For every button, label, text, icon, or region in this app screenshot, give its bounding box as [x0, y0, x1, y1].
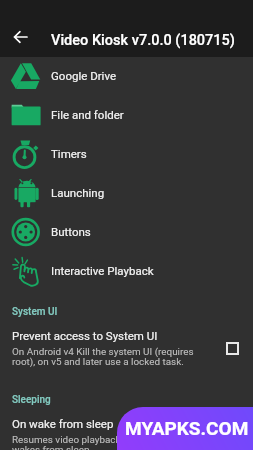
- button[interactable]: Navigate up: [0, 17, 40, 57]
- button[interactable]: Launching: [0, 173, 253, 212]
- button[interactable]: Buttons: [0, 212, 253, 251]
- staticText: File and folder: [51, 108, 124, 121]
- button[interactable]: Prevent access to System UI: [0, 329, 253, 368]
- staticText: System UI: [12, 306, 58, 318]
- staticText: Google Drive: [51, 69, 116, 82]
- staticText: On wake from sleep: [12, 417, 114, 430]
- staticText: Buttons: [51, 225, 91, 238]
- staticText: MYAPKS.COM: [125, 417, 249, 439]
- staticText: Timers: [51, 147, 87, 160]
- button[interactable]: On wake from sleep: [0, 417, 253, 450]
- staticText: Sleeping: [12, 394, 51, 406]
- staticText: On Android v4 Kill the system UI (requir…: [12, 346, 194, 368]
- staticText: Interactive Playback: [51, 264, 154, 277]
- staticText: Video Kiosk v7.0.0 (180715): [51, 32, 235, 49]
- staticText: Prevent access to System UI: [12, 329, 158, 342]
- staticText: Launching: [51, 186, 105, 199]
- button[interactable]: Google Drive: [0, 56, 253, 95]
- button[interactable]: Timers: [0, 134, 253, 173]
- button[interactable]: File and folder: [0, 95, 253, 134]
- button[interactable]: Interactive Playback: [0, 251, 253, 290]
- staticText: Resumes video playback when device wakes…: [12, 434, 178, 450]
